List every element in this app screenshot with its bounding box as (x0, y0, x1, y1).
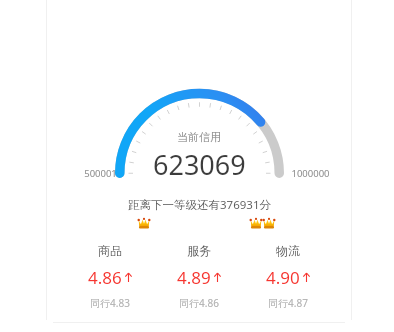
staticText: 623069 (153, 146, 246, 183)
staticText: 同行4.87 (268, 296, 308, 310)
staticText: 4.90 (266, 266, 300, 289)
other: 下一等级 (250, 217, 262, 229)
staticText: 商品 (98, 243, 122, 258)
other: 当前等级 (138, 217, 150, 229)
staticText: 4.89 (177, 266, 211, 289)
button[interactable]: 商品 (66, 243, 154, 310)
staticText: 500001 (84, 167, 117, 180)
staticText: 4.86 (88, 266, 122, 289)
button[interactable]: 服务 (154, 243, 243, 310)
staticText: 同行4.86 (179, 296, 219, 310)
staticText: 距离下一等级还有376931分 (128, 197, 271, 213)
staticText: 物流 (276, 243, 300, 258)
staticText: 同行4.83 (90, 296, 130, 310)
staticText: 当前信用 (177, 130, 221, 144)
button[interactable]: 物流 (243, 243, 332, 310)
staticText: 1000000 (291, 167, 330, 180)
staticText: 服务 (187, 243, 211, 258)
